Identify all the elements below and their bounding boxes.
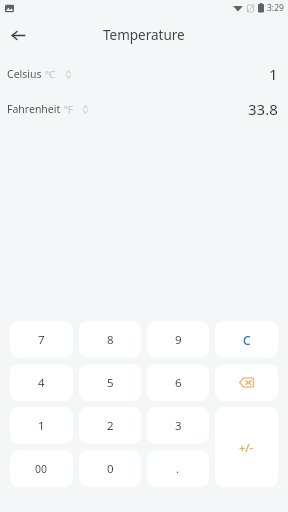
button[interactable]: 8 bbox=[79, 321, 141, 358]
button[interactable]: 3 bbox=[147, 407, 209, 444]
staticText: 4 bbox=[38, 375, 45, 391]
button[interactable]: 1 bbox=[10, 407, 73, 444]
staticText: 33.8 bbox=[248, 99, 278, 119]
button[interactable]: 4 bbox=[10, 364, 73, 401]
staticText: 2 bbox=[107, 418, 114, 434]
staticText: 0 bbox=[107, 461, 114, 477]
staticText: 5 bbox=[107, 375, 114, 391]
button[interactable]: 00 bbox=[10, 450, 73, 487]
button[interactable]: Celsius bbox=[0, 63, 288, 85]
button[interactable]: Backspace bbox=[215, 364, 278, 401]
staticText: °C bbox=[45, 68, 56, 81]
staticText: Fahrenheit bbox=[7, 102, 61, 116]
staticText: 7 bbox=[38, 332, 45, 348]
staticText: 00 bbox=[35, 462, 48, 476]
staticText: 9 bbox=[175, 332, 182, 348]
staticText: 1 bbox=[269, 64, 278, 84]
button[interactable]: 7 bbox=[10, 321, 73, 358]
staticText: 3 bbox=[175, 418, 182, 434]
button[interactable]: Clear bbox=[215, 321, 278, 358]
staticText: 6 bbox=[175, 375, 182, 391]
staticText: Temperature bbox=[103, 26, 185, 44]
staticText: . bbox=[176, 461, 180, 477]
button[interactable]: Fahrenheit bbox=[0, 98, 288, 120]
button[interactable]: 5 bbox=[79, 364, 141, 401]
staticText: 3:29 bbox=[267, 2, 284, 14]
button[interactable]: 0 bbox=[79, 450, 141, 487]
button[interactable]: Toggle sign bbox=[215, 407, 278, 487]
staticText: Celsius bbox=[7, 67, 42, 81]
staticText: C bbox=[243, 332, 251, 348]
staticText: +/- bbox=[239, 440, 254, 455]
button[interactable]: . bbox=[147, 450, 209, 487]
button[interactable]: 9 bbox=[147, 321, 209, 358]
button[interactable]: Back bbox=[0, 17, 36, 53]
staticText: 1 bbox=[38, 418, 45, 434]
staticText: °F bbox=[64, 103, 73, 116]
staticText: 8 bbox=[107, 332, 114, 348]
button[interactable]: 2 bbox=[79, 407, 141, 444]
button[interactable]: 6 bbox=[147, 364, 209, 401]
